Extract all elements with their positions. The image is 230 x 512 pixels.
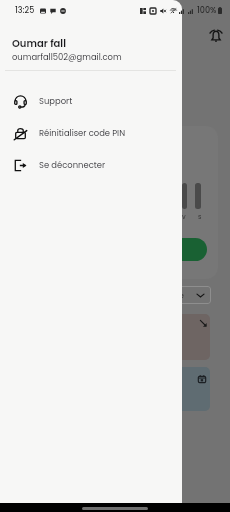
button[interactable] (120, 314, 210, 360)
staticText: Cette semaine (140, 291, 184, 300)
staticText: Oumar fall (12, 36, 66, 50)
staticText: 100% (197, 5, 217, 16)
staticText: Réinitialiser code PIN (39, 127, 126, 139)
button[interactable]: Filter (140, 286, 211, 304)
button[interactable] (120, 367, 210, 411)
button[interactable]: Réinitialiser code PIN (0, 117, 182, 149)
button[interactable]: Action (140, 238, 207, 261)
staticText: oumarfall502@gmail.com (12, 51, 122, 63)
staticText: Support (39, 95, 73, 107)
button[interactable]: Support (0, 85, 182, 117)
staticText: s (198, 212, 202, 221)
button[interactable]: Notifications (208, 28, 224, 44)
staticText: v (182, 212, 186, 221)
staticText: Se déconnecter (39, 159, 106, 171)
staticText: 13:25 (15, 5, 35, 16)
button[interactable]: Se déconnecter (0, 149, 182, 181)
